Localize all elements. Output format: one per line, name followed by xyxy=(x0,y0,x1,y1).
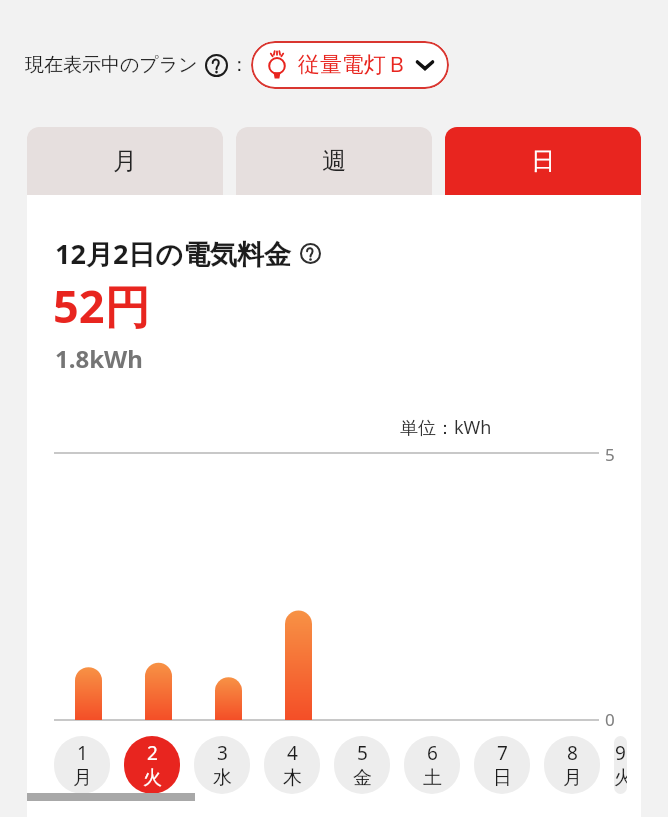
staticText: 金 xyxy=(353,766,372,790)
staticText: 4 xyxy=(287,740,298,766)
button[interactable]: 月 xyxy=(27,127,223,195)
staticText: ： xyxy=(230,53,249,77)
staticText: 日 xyxy=(493,766,512,790)
staticText: 8 xyxy=(567,740,578,766)
staticText: 木 xyxy=(283,766,302,790)
staticText: 単位：kWh xyxy=(400,415,492,440)
staticText: 52円 xyxy=(53,275,150,336)
button[interactable]: 7 xyxy=(474,736,530,794)
staticText: 週 xyxy=(322,146,346,176)
staticText: 6 xyxy=(427,740,438,766)
staticText: 月 xyxy=(113,146,137,176)
staticText: 3 xyxy=(217,740,228,766)
staticText: 月 xyxy=(563,766,582,790)
staticText: 現在表示中のプラン xyxy=(25,53,198,77)
staticText: 9 xyxy=(615,740,626,766)
button[interactable]: 8 xyxy=(544,736,600,794)
button[interactable]: 4 xyxy=(264,736,320,794)
staticText: 5 xyxy=(357,740,368,766)
button[interactable]: 3 xyxy=(194,736,250,794)
staticText: 5 xyxy=(605,443,615,466)
staticText: 火 xyxy=(143,766,162,790)
staticText: 0 xyxy=(605,708,615,731)
staticText: 12月2日の電気料金 xyxy=(55,235,291,272)
button[interactable]: プランのヘルプ xyxy=(205,54,228,77)
staticText: 日 xyxy=(531,146,555,176)
staticText: 土 xyxy=(423,766,442,790)
staticText: 水 xyxy=(213,766,232,790)
staticText: 火 xyxy=(614,766,627,790)
button[interactable]: 日 xyxy=(445,127,641,195)
button[interactable]: 電気料金のヘルプ xyxy=(300,243,321,264)
staticText: 2 xyxy=(147,740,158,766)
staticText: 月 xyxy=(73,766,92,790)
staticText: 1 xyxy=(77,740,88,766)
button[interactable]: 従量電灯Ｂ xyxy=(251,41,449,89)
button[interactable]: 6 xyxy=(404,736,460,794)
button[interactable]: 1 xyxy=(54,736,110,794)
staticText: 従量電灯Ｂ xyxy=(298,51,408,79)
button[interactable]: 週 xyxy=(236,127,432,195)
button[interactable]: 5 xyxy=(334,736,390,794)
staticText: 1.8kWh xyxy=(55,342,143,375)
button[interactable]: 2 xyxy=(124,736,180,794)
staticText: 7 xyxy=(497,740,508,766)
button[interactable]: 9 xyxy=(614,736,627,794)
